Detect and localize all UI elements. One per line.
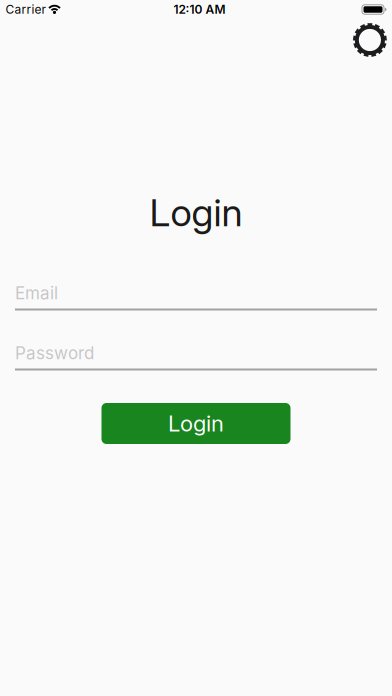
staticText: Login bbox=[168, 410, 224, 437]
button[interactable]: Login bbox=[101, 403, 290, 444]
button[interactable]: Email bbox=[15, 283, 377, 310]
staticText: Login bbox=[149, 189, 242, 235]
staticText: 12:10 AM bbox=[173, 2, 225, 17]
staticText: Email bbox=[15, 283, 58, 303]
staticText: Carrier bbox=[5, 2, 46, 17]
button[interactable]: Settings bbox=[352, 22, 387, 57]
button[interactable]: Password bbox=[15, 343, 377, 370]
staticText: Password bbox=[15, 343, 94, 363]
